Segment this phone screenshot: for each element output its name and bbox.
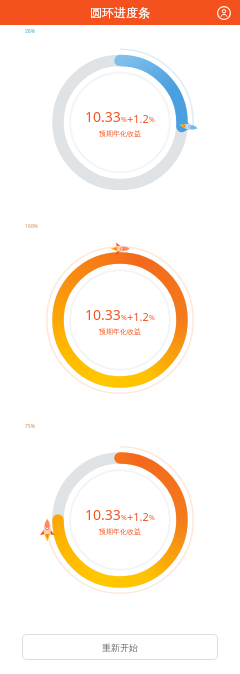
staticText: 预期年化收益 bbox=[99, 327, 141, 336]
staticText: % bbox=[149, 115, 155, 125]
staticText: % bbox=[121, 513, 127, 523]
staticText: % bbox=[149, 513, 155, 523]
button[interactable]: 重新开始 bbox=[22, 634, 218, 660]
staticText: 预期年化收益 bbox=[99, 129, 141, 138]
staticText: 100% bbox=[25, 223, 38, 230]
staticText: 10.33 bbox=[85, 505, 121, 524]
staticText: 26% bbox=[25, 28, 35, 35]
staticText: % bbox=[121, 115, 127, 125]
button[interactable]: Account bbox=[214, 3, 234, 23]
staticText: 75% bbox=[25, 423, 35, 430]
staticText: 预期年化收益 bbox=[99, 527, 141, 536]
staticText: +1.2 bbox=[127, 309, 149, 324]
staticText: +1.2 bbox=[127, 509, 149, 524]
staticText: 圆环进度条 bbox=[90, 5, 150, 20]
staticText: 重新开始 bbox=[102, 642, 138, 653]
staticText: % bbox=[121, 313, 127, 323]
staticText: 10.33 bbox=[85, 305, 121, 324]
staticText: 10.33 bbox=[85, 107, 121, 126]
staticText: % bbox=[149, 313, 155, 323]
staticText: +1.2 bbox=[127, 111, 149, 126]
